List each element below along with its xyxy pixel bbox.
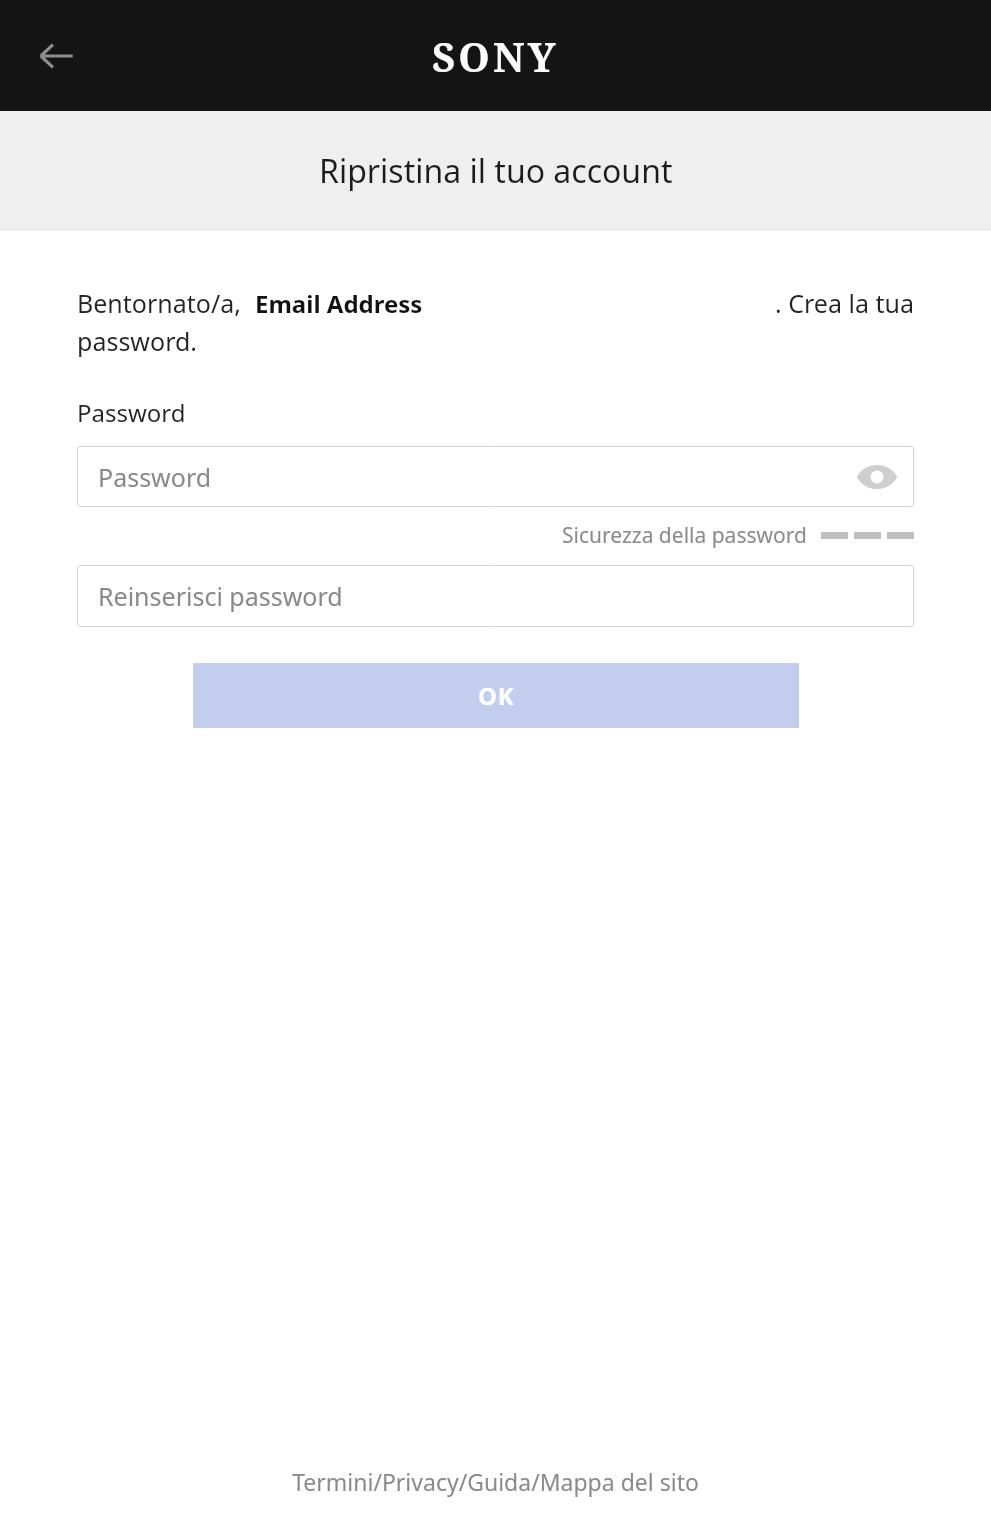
button[interactable]: Password xyxy=(77,446,914,507)
button[interactable]: OK xyxy=(193,663,799,728)
staticText: Password xyxy=(98,460,212,494)
staticText: Password xyxy=(77,396,186,429)
staticText: Bentornato/a, xyxy=(77,286,241,320)
staticText: OK xyxy=(478,679,515,712)
staticText: Ripristina il tuo account xyxy=(319,149,673,193)
button[interactable]: Termini/Privacy/Guida/Mappa del sito xyxy=(292,1466,699,1497)
button[interactable]: Back xyxy=(18,18,94,94)
staticText: Sicurezza della password xyxy=(562,521,807,550)
staticText: SONY xyxy=(432,29,559,83)
button[interactable]: Reinserisci password xyxy=(77,565,914,627)
button[interactable]: Show password xyxy=(854,454,900,500)
staticText: Reinserisci password xyxy=(98,579,343,613)
staticText: Email Address xyxy=(255,287,423,320)
staticText: Termini/Privacy/Guida/Mappa del sito xyxy=(292,1466,699,1497)
staticText: password. xyxy=(77,324,198,358)
staticText: . Crea la tua xyxy=(775,286,914,320)
